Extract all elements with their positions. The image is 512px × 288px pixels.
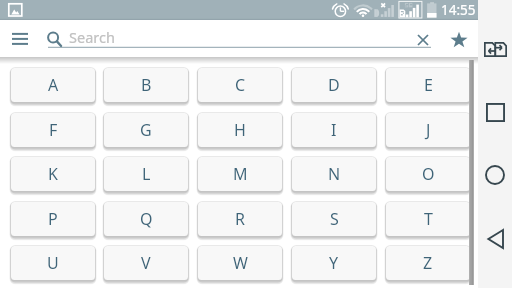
- button[interactable]: T: [386, 202, 470, 236]
- button[interactable]: M: [198, 157, 282, 191]
- button[interactable]: K: [11, 157, 95, 191]
- button[interactable]: L: [104, 157, 188, 191]
- button[interactable]: G: [104, 113, 188, 147]
- staticText: H: [234, 119, 246, 141]
- staticText: 14:55: [441, 1, 476, 19]
- button[interactable]: R: [198, 202, 282, 236]
- staticText: D: [328, 74, 340, 96]
- staticText: M: [233, 163, 248, 185]
- staticText: R: [235, 208, 245, 230]
- staticText: A: [48, 74, 59, 96]
- staticText: V: [141, 252, 151, 274]
- button[interactable]: Recent apps: [479, 96, 511, 128]
- button[interactable]: Clear search: [405, 22, 441, 58]
- staticText: E: [424, 74, 433, 96]
- button[interactable]: F: [11, 113, 95, 147]
- button[interactable]: E: [386, 68, 470, 102]
- staticText: W: [233, 252, 248, 274]
- staticText: Q: [140, 208, 153, 230]
- staticText: K: [48, 163, 58, 185]
- button[interactable]: U: [11, 246, 95, 280]
- button[interactable]: N: [292, 157, 376, 191]
- button[interactable]: W: [198, 246, 282, 280]
- button[interactable]: Rotate screen: [479, 33, 511, 65]
- staticText: P: [48, 208, 58, 230]
- staticText: F: [49, 119, 58, 141]
- staticText: I: [331, 119, 337, 141]
- staticText: C: [235, 74, 246, 96]
- button[interactable]: J: [386, 113, 470, 147]
- button[interactable]: D: [292, 68, 376, 102]
- button[interactable]: Home: [479, 159, 511, 191]
- staticText: N: [328, 163, 341, 185]
- staticText: J: [426, 119, 431, 141]
- button[interactable]: Z: [386, 246, 470, 280]
- button[interactable]: Y: [292, 246, 376, 280]
- staticText: L: [142, 163, 151, 185]
- button[interactable]: H: [198, 113, 282, 147]
- staticText: Y: [329, 252, 339, 274]
- button[interactable]: I: [292, 113, 376, 147]
- button[interactable]: V: [104, 246, 188, 280]
- staticText: Z: [423, 252, 433, 274]
- button[interactable]: Search: [48, 20, 431, 57]
- button[interactable]: P: [11, 202, 95, 236]
- staticText: B: [141, 74, 152, 96]
- button[interactable]: Menu: [1, 20, 39, 57]
- button[interactable]: O: [386, 157, 470, 191]
- button[interactable]: Back: [479, 223, 511, 255]
- button[interactable]: Q: [104, 202, 188, 236]
- button[interactable]: C: [198, 68, 282, 102]
- button[interactable]: S: [292, 202, 376, 236]
- button[interactable]: Favorites: [441, 21, 477, 57]
- button[interactable]: B: [104, 68, 188, 102]
- staticText: G: [140, 119, 152, 141]
- staticText: Search: [69, 27, 115, 47]
- staticText: S: [330, 208, 339, 230]
- button[interactable]: A: [11, 68, 95, 102]
- staticText: T: [424, 208, 433, 230]
- staticText: U: [47, 252, 59, 274]
- staticText: O: [422, 163, 435, 185]
